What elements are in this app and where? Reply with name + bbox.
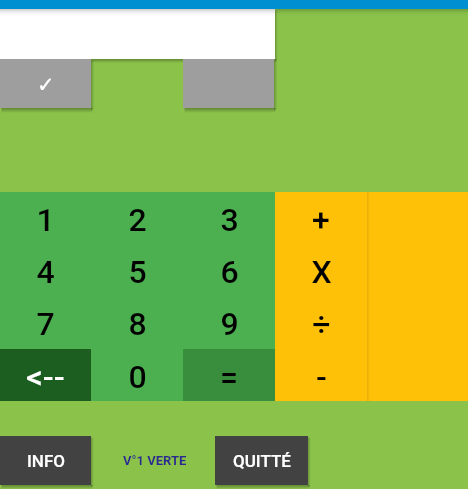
staticText: 6 [220, 253, 239, 291]
staticText: 8 [128, 305, 147, 343]
staticText: 4 [36, 253, 55, 291]
staticText: + [312, 201, 330, 239]
button[interactable]: 2 [91, 192, 183, 244]
staticText: 2 [128, 201, 147, 239]
staticText: 7 [36, 305, 55, 343]
staticText: 3 [220, 201, 239, 239]
staticText: 1 [36, 201, 55, 239]
button[interactable]: 5 [91, 244, 183, 296]
staticText: X [311, 253, 332, 291]
staticText: 9 [220, 305, 239, 343]
button[interactable]: = [183, 349, 275, 401]
staticText: QUITTÉ [233, 451, 291, 471]
staticText: - [316, 358, 327, 396]
staticText: ✓ [37, 73, 55, 97]
button[interactable]: 3 [183, 192, 275, 244]
button[interactable]: ÷ [275, 296, 367, 348]
button[interactable]: 7 [0, 296, 91, 348]
button[interactable]: + [275, 192, 367, 244]
button[interactable]: <-- [0, 349, 91, 401]
staticText: V°1 VERTE [123, 453, 187, 468]
staticText: 5 [128, 253, 147, 291]
button[interactable]: INFO [0, 436, 91, 485]
staticText: INFO [27, 451, 65, 471]
button[interactable]: X [275, 244, 367, 296]
button[interactable] [0, 9, 275, 59]
staticText: <-- [26, 358, 65, 396]
button[interactable]: - [275, 348, 367, 401]
button[interactable]: 8 [91, 296, 183, 348]
staticText: = [220, 358, 238, 396]
button[interactable]: QUITTÉ [215, 436, 308, 485]
button[interactable]: 4 [0, 244, 91, 296]
button[interactable]: 9 [183, 296, 275, 348]
button[interactable]: 6 [183, 244, 275, 296]
staticText: ÷ [312, 305, 331, 343]
button[interactable]: 0 [91, 348, 183, 401]
button[interactable]: Valider [0, 59, 91, 108]
staticText: 0 [128, 358, 147, 396]
button[interactable]: 1 [0, 192, 91, 244]
